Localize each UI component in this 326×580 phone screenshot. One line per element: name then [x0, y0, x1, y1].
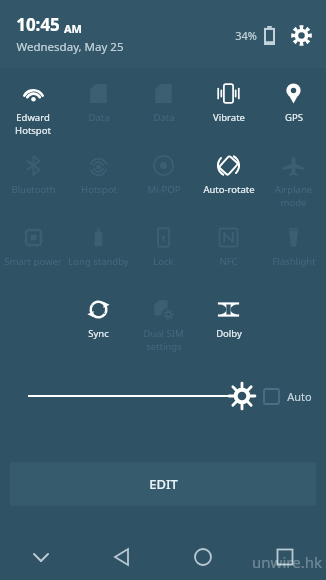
button[interactable]: EDIT: [10, 462, 316, 506]
button[interactable]: Dual SIM: [131, 290, 196, 364]
staticText: GPS: [285, 111, 303, 124]
staticText: AM: [64, 21, 82, 36]
button[interactable]: Home: [162, 534, 244, 580]
button[interactable]: Settings: [288, 22, 314, 48]
staticText: 10:45: [16, 13, 60, 36]
staticText: Edward: [16, 111, 50, 124]
button[interactable]: Recents: [244, 534, 326, 580]
staticText: Wednesday, May 25: [16, 39, 124, 55]
staticText: Dual SIM: [143, 327, 184, 340]
staticText: Data: [88, 111, 110, 124]
staticText: Smart power: [4, 255, 62, 268]
button[interactable]: Vibrate: [196, 74, 261, 146]
button[interactable]: Long standby: [66, 218, 131, 290]
button[interactable]: Back: [81, 534, 162, 580]
staticText: Bluetooth: [11, 183, 56, 196]
button[interactable]: Bluetooth: [0, 146, 66, 218]
button[interactable]: Auto-rotate: [196, 146, 261, 218]
button[interactable]: Data: [131, 74, 196, 146]
staticText: 34%: [235, 28, 257, 43]
button[interactable]: GPS: [261, 74, 326, 146]
staticText: Dolby: [216, 327, 242, 340]
staticText: unwire.hk: [252, 552, 322, 572]
staticText: NFC: [219, 255, 238, 268]
button[interactable]: Flashlight: [261, 218, 326, 290]
staticText: Data: [153, 111, 175, 124]
staticText: Sync: [88, 327, 109, 340]
button[interactable]: Sync: [66, 290, 131, 364]
staticText: Auto-rotate: [203, 183, 255, 196]
staticText: EDIT: [149, 475, 178, 493]
staticText: Auto: [287, 389, 312, 404]
button[interactable]: Auto: [264, 389, 312, 404]
staticText: Long standby: [68, 255, 129, 268]
button[interactable]: Smart power: [0, 218, 66, 290]
button[interactable]: Dolby: [196, 290, 261, 364]
staticText: Hotspot: [81, 183, 117, 196]
button[interactable]: Data: [66, 74, 131, 146]
staticText: Lock: [153, 255, 174, 268]
button[interactable]: Airplane mode: [261, 146, 326, 218]
staticText: Mi-POP: [147, 183, 181, 196]
button[interactable]: Edward: [0, 74, 66, 146]
button[interactable]: [28, 379, 248, 413]
staticText: Flashlight: [272, 255, 316, 268]
staticText: Airplane mode: [261, 183, 326, 209]
staticText: Vibrate: [213, 111, 245, 124]
staticText: Hotspot: [15, 124, 51, 137]
staticText: settings: [146, 340, 182, 353]
button[interactable]: Collapse: [0, 534, 81, 580]
